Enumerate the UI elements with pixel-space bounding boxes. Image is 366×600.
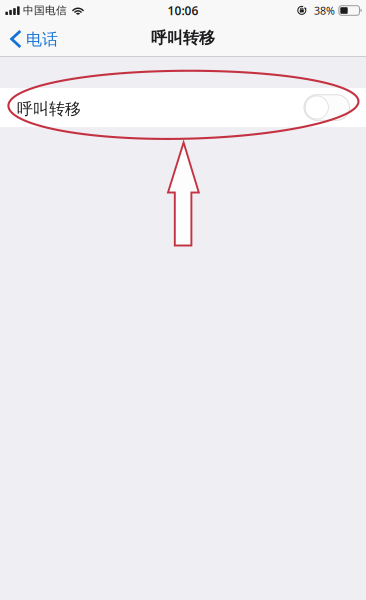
staticText: 电话 <box>26 30 58 49</box>
staticText: 呼叫转移 <box>17 99 81 119</box>
button[interactable]: 电话 <box>0 21 67 57</box>
staticText: 38% <box>314 3 335 18</box>
staticText: 中国电信 <box>23 4 67 17</box>
staticText: 呼叫转移 <box>151 28 215 48</box>
button[interactable]: 呼叫转移 <box>0 88 366 127</box>
staticText: 10:06 <box>167 2 198 18</box>
